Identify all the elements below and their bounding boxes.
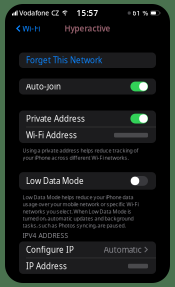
staticText: Configure IP xyxy=(26,244,74,255)
staticText: Auto-Join xyxy=(26,81,61,92)
staticText: IPV4 ADDRESS xyxy=(22,231,68,240)
staticText: Wi-Fi xyxy=(22,23,40,34)
button[interactable]: Wi-Fi xyxy=(5,22,44,35)
staticText: Hyperactive xyxy=(64,23,110,34)
staticText: 61 % xyxy=(132,9,148,17)
button[interactable]: Forget This Network xyxy=(19,52,156,68)
staticText: Automatic xyxy=(104,244,142,255)
staticText: Vodafone CZ xyxy=(19,9,59,17)
staticText: Forget This Network xyxy=(26,55,102,65)
staticText: Low Data Mode xyxy=(26,176,84,186)
staticText: Low Data Mode helps reduce your iPhone d… xyxy=(22,194,138,229)
button[interactable]: Configure IP xyxy=(19,241,156,258)
staticText: 15:57 xyxy=(76,8,98,18)
staticText: Wi-Fi Address xyxy=(26,130,77,140)
staticText: Using a private address helps reduce tra… xyxy=(22,147,138,161)
staticText: Private Address xyxy=(26,113,85,124)
staticText: IP Address xyxy=(26,261,67,271)
